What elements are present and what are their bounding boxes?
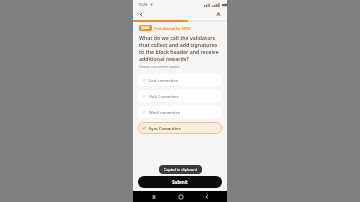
staticText: Submit (172, 179, 188, 185)
button[interactable]: Wind committee (138, 106, 222, 118)
staticText: First attempt for 100% (154, 26, 191, 31)
staticText: Choose one correct answer (139, 65, 180, 69)
staticText: Hub Committee (149, 94, 179, 99)
button[interactable]: Recents (148, 191, 159, 202)
staticText: What do we call the validators that coll… (139, 34, 221, 62)
button[interactable]: Back (137, 10, 146, 19)
staticText: QUIZ (141, 26, 150, 30)
staticText: 10:28 (138, 2, 148, 7)
button[interactable]: Link committee (138, 74, 222, 86)
button[interactable]: Sync Committee (138, 122, 222, 134)
button[interactable]: Back (201, 191, 212, 202)
staticText: Wind committee (149, 110, 180, 115)
staticText: Copied to clipboard (164, 167, 197, 172)
button[interactable]: Submit (138, 176, 222, 188)
button[interactable]: Hub Committee (138, 90, 222, 102)
button[interactable]: Share (214, 10, 223, 19)
staticText: Link committee (149, 78, 179, 83)
button[interactable]: Home (175, 191, 186, 202)
staticText: Sync Committee (149, 126, 181, 131)
